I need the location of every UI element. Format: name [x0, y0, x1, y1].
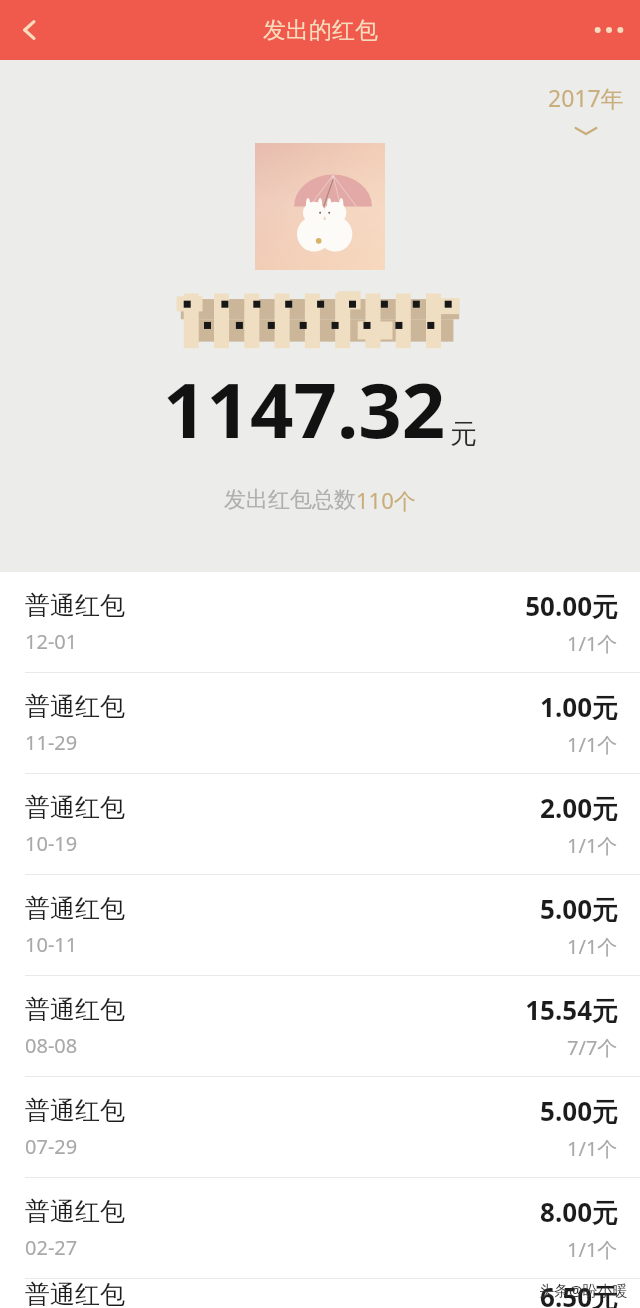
button[interactable]: 普通红包 [0, 673, 640, 773]
staticText: 1.00元 [540, 689, 618, 725]
button[interactable]: 普通红包 [0, 774, 640, 874]
staticText: 头条@盼小暖 [539, 1280, 628, 1300]
staticText: 50.00元 [525, 588, 618, 624]
staticText: 发出的红包 [263, 16, 378, 45]
staticText: 发出红包总数 [224, 486, 356, 514]
staticText: 7/7个 [567, 1034, 618, 1061]
staticText: 11-29 [25, 729, 78, 756]
staticText: 普通红包 [25, 590, 125, 621]
staticText: 02-27 [25, 1234, 78, 1261]
button[interactable]: 普通红包 [0, 875, 640, 975]
staticText: 普通红包 [25, 1095, 125, 1126]
staticText: 普通红包 [25, 1196, 125, 1227]
button[interactable]: 普通红包 [0, 572, 640, 672]
staticText: 110个 [356, 485, 416, 515]
staticText: 1/1个 [567, 832, 618, 859]
staticText: 1/1个 [567, 1135, 618, 1162]
staticText: 普通红包 [25, 691, 125, 722]
staticText: 5.00元 [540, 1093, 618, 1129]
button[interactable]: Profile picture [255, 143, 385, 270]
staticText: 2017年 [548, 82, 624, 113]
button[interactable]: 普通红包 [0, 976, 640, 1076]
button[interactable]: 2017年 [548, 82, 624, 137]
staticText: 12-01 [25, 628, 78, 655]
button[interactable]: 普通红包 [0, 1077, 640, 1177]
staticText: 元 [450, 417, 477, 451]
button[interactable]: 普通红包 [0, 1279, 640, 1308]
staticText: 10-11 [25, 931, 78, 958]
staticText: 普通红包 [25, 994, 125, 1025]
staticText: 普通红包 [25, 1279, 125, 1308]
staticText: 1/1个 [567, 731, 618, 758]
staticText: 5.00元 [540, 891, 618, 927]
staticText: 6.50元 [540, 1279, 618, 1308]
staticText: 普通红包 [25, 792, 125, 823]
button[interactable]: More options [578, 0, 640, 60]
staticText: 1/1个 [567, 1236, 618, 1263]
staticText: 8.00元 [540, 1194, 618, 1230]
staticText: 普通红包 [25, 893, 125, 924]
staticText: 1/1个 [567, 933, 618, 960]
staticText: 08-08 [25, 1032, 78, 1059]
staticText: 10-19 [25, 830, 78, 857]
staticText: 15.54元 [525, 992, 618, 1028]
staticText: 1/1个 [567, 630, 618, 657]
staticText: 2.00元 [540, 790, 618, 826]
button[interactable]: Back [0, 0, 60, 60]
staticText: 07-29 [25, 1133, 78, 1160]
staticText: 1147.32 [163, 357, 446, 461]
button[interactable]: 普通红包 [0, 1178, 640, 1278]
